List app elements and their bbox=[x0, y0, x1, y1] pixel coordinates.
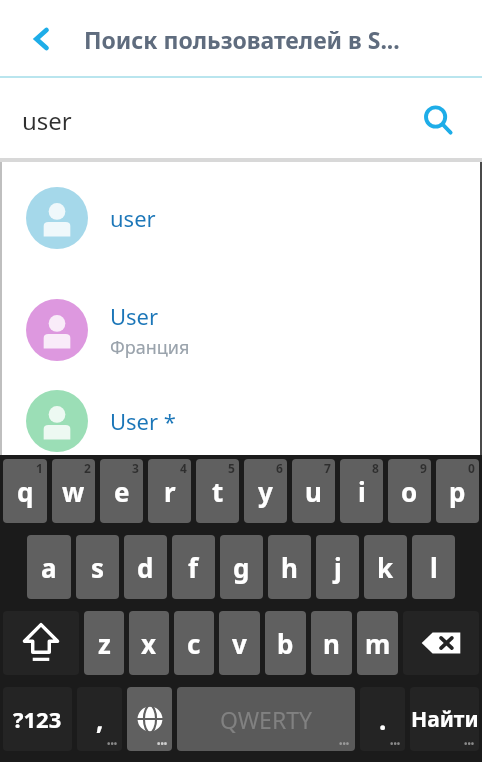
button[interactable]: , bbox=[77, 687, 122, 751]
button[interactable]: o bbox=[388, 459, 431, 523]
button[interactable]: k bbox=[364, 535, 407, 599]
staticText: 9 bbox=[420, 460, 427, 476]
staticText: y bbox=[258, 474, 273, 509]
staticText: 8 bbox=[372, 460, 379, 476]
staticText: q bbox=[17, 474, 34, 509]
button[interactable]: user bbox=[0, 162, 482, 274]
staticText: p bbox=[449, 474, 466, 509]
staticText: u bbox=[305, 474, 322, 509]
staticText: ••• bbox=[107, 737, 118, 749]
button[interactable]: l bbox=[412, 535, 455, 599]
staticText: v bbox=[232, 626, 247, 661]
staticText: 4 bbox=[180, 460, 187, 476]
button[interactable]: y bbox=[244, 459, 287, 523]
staticText: i bbox=[358, 474, 366, 509]
staticText: , bbox=[96, 702, 104, 737]
button[interactable]: q bbox=[3, 459, 47, 523]
button[interactable]: Space bbox=[177, 687, 355, 751]
staticText: b bbox=[277, 626, 294, 661]
button[interactable]: Backspace bbox=[403, 611, 479, 675]
staticText: ?123 bbox=[13, 704, 62, 734]
button[interactable]: v bbox=[219, 611, 260, 675]
staticText: w bbox=[62, 474, 85, 509]
staticText: j bbox=[334, 550, 342, 585]
button[interactable]: ?123 bbox=[3, 687, 72, 751]
button[interactable]: x bbox=[129, 611, 169, 675]
staticText: 6 bbox=[276, 460, 283, 476]
staticText: QWERTY bbox=[220, 704, 313, 735]
button[interactable]: Back bbox=[12, 9, 72, 69]
staticText: ••• bbox=[390, 737, 401, 749]
staticText: t bbox=[212, 474, 224, 509]
staticText: ••• bbox=[157, 737, 168, 749]
staticText: o bbox=[401, 474, 418, 509]
staticText: n bbox=[323, 626, 340, 661]
staticText: . bbox=[379, 702, 387, 737]
staticText: 2 bbox=[84, 460, 91, 476]
staticText: k bbox=[377, 550, 394, 585]
button[interactable]: Shift bbox=[3, 611, 79, 675]
staticText: user bbox=[110, 203, 156, 233]
button[interactable]: Найти bbox=[410, 687, 479, 751]
staticText: e bbox=[114, 474, 130, 509]
button[interactable]: p bbox=[436, 459, 479, 523]
button[interactable]: c bbox=[174, 611, 214, 675]
staticText: s bbox=[91, 550, 105, 585]
staticText: Поиск пользователей в S... bbox=[84, 24, 400, 55]
button[interactable]: Change language bbox=[127, 687, 172, 751]
staticText: g bbox=[233, 550, 250, 585]
button[interactable]: b bbox=[265, 611, 306, 675]
staticText: ••• bbox=[464, 737, 475, 749]
staticText: f bbox=[188, 550, 199, 585]
staticText: c bbox=[187, 626, 201, 661]
staticText: Найти bbox=[411, 705, 479, 734]
button[interactable]: f bbox=[172, 535, 215, 599]
button[interactable]: Search bbox=[412, 94, 464, 146]
staticText: User bbox=[110, 301, 159, 331]
button[interactable]: j bbox=[316, 535, 359, 599]
staticText: d bbox=[137, 550, 154, 585]
staticText: l bbox=[430, 550, 438, 585]
staticText: x bbox=[141, 626, 157, 661]
button[interactable]: m bbox=[357, 611, 398, 675]
staticText: 0 bbox=[468, 460, 475, 476]
staticText: m bbox=[365, 626, 391, 661]
staticText: user bbox=[22, 104, 72, 137]
button[interactable]: i bbox=[340, 459, 383, 523]
button[interactable]: w bbox=[52, 459, 95, 523]
staticText: 3 bbox=[132, 460, 139, 476]
button[interactable]: e bbox=[100, 459, 143, 523]
button[interactable]: a bbox=[27, 535, 71, 599]
staticText: 1 bbox=[36, 460, 43, 476]
button[interactable]: . bbox=[360, 687, 405, 751]
staticText: User * bbox=[110, 406, 176, 436]
staticText: a bbox=[41, 550, 57, 585]
button[interactable]: User bbox=[0, 274, 482, 386]
staticText: Франция bbox=[110, 335, 190, 360]
staticText: r bbox=[164, 474, 176, 509]
staticText: h bbox=[281, 550, 298, 585]
button[interactable]: u bbox=[292, 459, 335, 523]
button[interactable]: z bbox=[84, 611, 124, 675]
button[interactable]: n bbox=[311, 611, 352, 675]
button[interactable]: g bbox=[220, 535, 263, 599]
staticText: z bbox=[98, 626, 111, 661]
button[interactable]: s bbox=[76, 535, 119, 599]
staticText: 5 bbox=[228, 460, 235, 476]
button[interactable]: r bbox=[148, 459, 191, 523]
staticText: ••• bbox=[339, 737, 350, 749]
staticText: 7 bbox=[324, 460, 331, 476]
button[interactable]: h bbox=[268, 535, 311, 599]
button[interactable]: t bbox=[196, 459, 239, 523]
button[interactable]: User * bbox=[0, 386, 482, 455]
button[interactable]: d bbox=[124, 535, 167, 599]
